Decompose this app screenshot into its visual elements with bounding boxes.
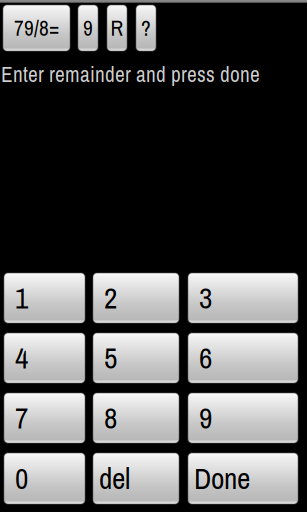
staticText: 1 (15, 278, 28, 318)
button[interactable]: 9 (188, 393, 298, 443)
staticText: R (110, 14, 123, 42)
staticText: del (99, 459, 130, 498)
staticText: 3 (199, 278, 212, 318)
button[interactable]: 7 (4, 393, 85, 443)
button[interactable]: 3 (188, 273, 298, 323)
staticText: 0 (15, 459, 28, 498)
button[interactable]: Done (188, 453, 298, 504)
staticText: Enter remainder and press done (1, 60, 260, 89)
staticText: 4 (15, 338, 28, 378)
button[interactable]: 1 (4, 273, 85, 323)
staticText: 6 (199, 338, 212, 378)
staticText: 79/8= (14, 14, 59, 42)
staticText: 9 (199, 398, 212, 438)
button[interactable]: 4 (4, 333, 85, 383)
button[interactable]: 5 (93, 333, 179, 383)
button[interactable]: 2 (93, 273, 179, 323)
button[interactable]: 8 (93, 393, 179, 443)
staticText: Done (194, 459, 250, 498)
button[interactable]: 6 (188, 333, 298, 383)
staticText: 9 (83, 14, 93, 42)
button[interactable]: R (107, 5, 127, 51)
button[interactable]: 9 (78, 5, 98, 51)
button[interactable]: 0 (4, 453, 85, 504)
staticText: 5 (104, 338, 117, 378)
staticText: ? (141, 14, 151, 42)
button[interactable]: 79/8= (3, 5, 70, 51)
staticText: 2 (104, 278, 117, 318)
staticText: 8 (104, 398, 117, 438)
staticText: 7 (15, 398, 28, 438)
button[interactable]: del (93, 453, 179, 504)
button[interactable]: ? (136, 5, 156, 51)
